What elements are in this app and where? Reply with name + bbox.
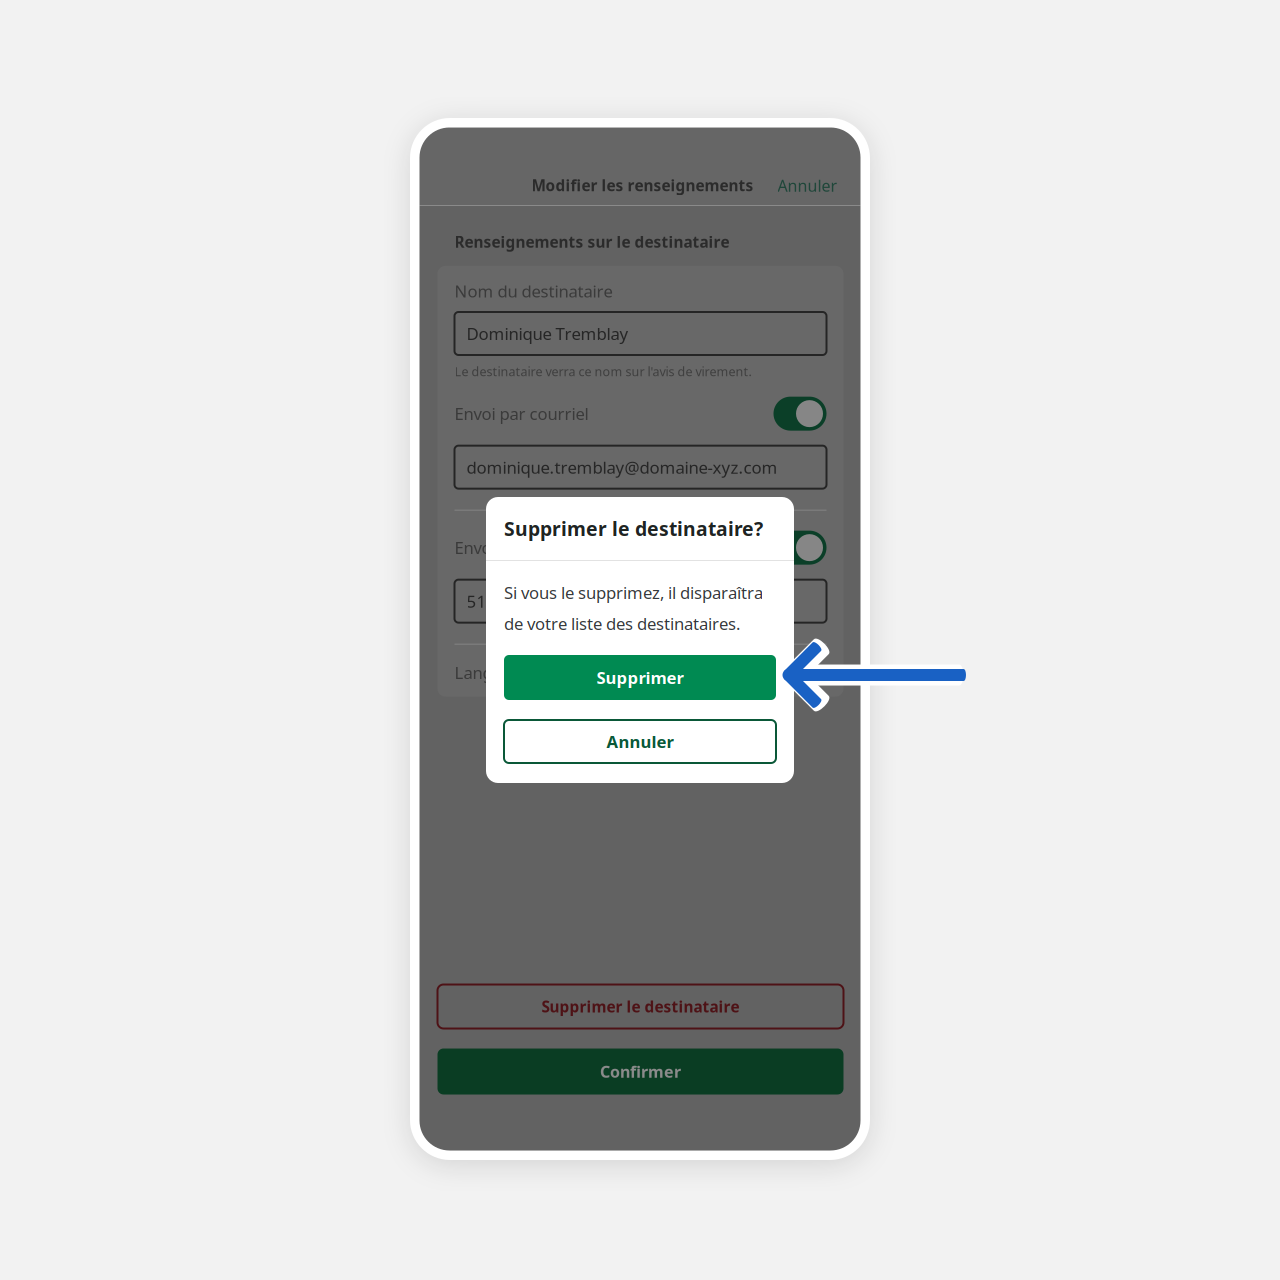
staticText: dominique.tremblay@domaine-xyz.com <box>466 456 777 478</box>
staticText: Le destinataire verra ce nom sur l'avis … <box>454 363 751 380</box>
staticText: Annuler <box>777 175 837 196</box>
button[interactable]: Envoi par message texte <box>454 531 826 565</box>
button[interactable]: Annuler <box>504 720 776 763</box>
staticText: Envoi par message texte <box>454 537 641 559</box>
button[interactable]: 514 555-0199 <box>454 580 826 623</box>
staticText: Modifier les renseignements <box>531 175 753 195</box>
staticText: Annuler <box>606 730 673 752</box>
button[interactable]: Envoi par courriel <box>454 397 826 431</box>
staticText: 514 555-0199 <box>466 590 575 612</box>
staticText: de votre liste des destinataires. <box>504 612 740 635</box>
staticText: Supprimer <box>596 666 683 688</box>
button[interactable]: Langue de correspondance <box>454 662 826 684</box>
button[interactable]: Annuler <box>777 165 861 205</box>
staticText: Supprimer le destinataire <box>541 996 739 1017</box>
button[interactable]: Supprimer <box>504 655 776 700</box>
staticText: Si vous le supprimez, il disparaîtra <box>504 581 763 603</box>
staticText: Langue de correspondance <box>454 662 663 684</box>
button[interactable]: Dominique Tremblay <box>454 312 826 355</box>
staticText: Envoi par courriel <box>454 403 588 425</box>
staticText: Dominique Tremblay <box>466 322 628 345</box>
staticText: Nom du destinataire <box>454 280 612 302</box>
staticText: Confirmer <box>600 1061 681 1082</box>
button[interactable]: dominique.tremblay@domaine-xyz.com <box>454 446 826 489</box>
button[interactable]: Supprimer le destinataire <box>437 984 843 1028</box>
button[interactable]: Confirmer <box>437 1048 843 1094</box>
staticText: Supprimer le destinataire? <box>504 516 763 541</box>
staticText: Renseignements sur le destinataire <box>454 231 729 252</box>
